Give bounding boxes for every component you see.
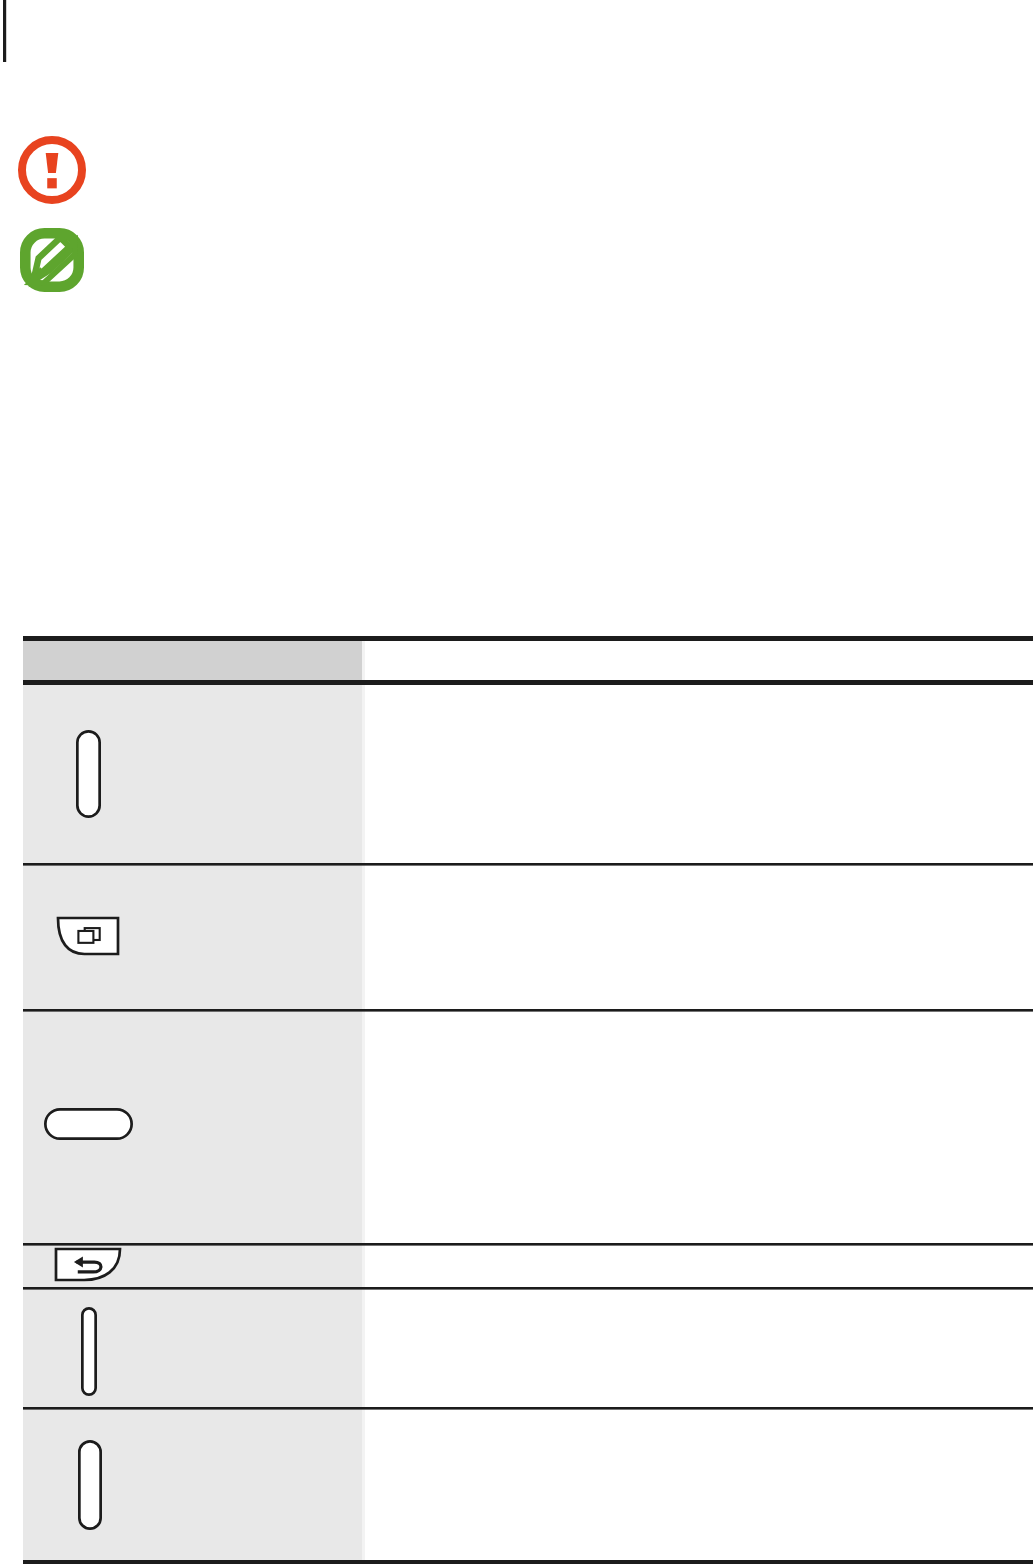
button[interactable]: Device key layout reference page bbox=[0, 0, 1033, 1564]
